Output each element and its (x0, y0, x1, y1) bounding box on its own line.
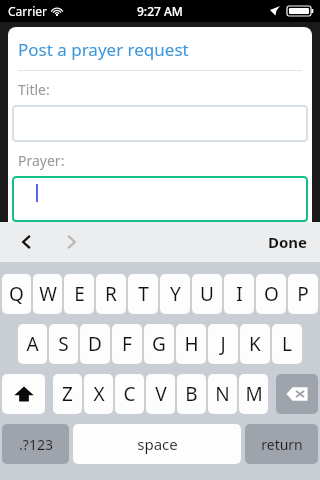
staticText: W (39, 281, 57, 307)
button[interactable]: J (208, 324, 238, 364)
staticText: return (261, 435, 303, 454)
button[interactable]: space (73, 424, 241, 464)
button[interactable]: A (18, 324, 47, 364)
staticText: 9:27 AM (137, 3, 183, 19)
button[interactable]: V (146, 374, 175, 414)
staticText: R (105, 281, 117, 307)
staticText: Carrier (8, 3, 48, 19)
button[interactable]: X (84, 374, 113, 414)
staticText: S (58, 331, 69, 357)
button[interactable]: Q (2, 274, 31, 314)
button[interactable]: K (240, 324, 270, 364)
staticText: K (249, 331, 261, 357)
staticText: U (200, 281, 214, 307)
staticText: D (88, 331, 102, 357)
staticText: F (122, 331, 132, 357)
button[interactable]: U (192, 274, 222, 314)
staticText: T (138, 281, 149, 307)
staticText: X (93, 381, 105, 407)
staticText: O (264, 281, 279, 307)
staticText: V (155, 381, 167, 407)
staticText: E (74, 281, 85, 307)
button[interactable]: G (144, 324, 174, 364)
staticText: space (137, 434, 178, 454)
staticText: H (184, 331, 199, 357)
staticText: B (185, 381, 198, 407)
staticText: Y (170, 281, 181, 307)
button[interactable]: P (288, 274, 318, 314)
staticText: A (26, 331, 39, 357)
staticText: .?123 (19, 435, 53, 454)
staticText: Post a prayer request (18, 38, 189, 61)
button[interactable]: Next field (52, 223, 90, 261)
staticText: I (236, 281, 243, 307)
button[interactable] (12, 176, 308, 222)
staticText: N (215, 381, 230, 407)
button[interactable]: Shift (2, 374, 45, 414)
staticText: L (282, 331, 292, 357)
button[interactable]: Backspace (276, 374, 318, 414)
button[interactable]: O (256, 274, 286, 314)
staticText: Title: (18, 80, 50, 99)
button[interactable]: E (64, 274, 94, 314)
staticText: M (245, 381, 263, 407)
button[interactable]: M (239, 374, 268, 414)
staticText: J (220, 331, 226, 357)
button[interactable]: W (33, 274, 62, 314)
staticText: Prayer: (18, 151, 65, 170)
button[interactable]: H (176, 324, 206, 364)
button[interactable]: return (245, 424, 318, 464)
button[interactable]: Done (268, 232, 308, 252)
button[interactable]: L (272, 324, 302, 364)
button[interactable]: D (80, 324, 110, 364)
button[interactable]: S (49, 324, 78, 364)
button[interactable] (12, 105, 308, 142)
staticText: Done (268, 232, 308, 252)
staticText: Z (62, 381, 73, 407)
button[interactable]: I (224, 274, 254, 314)
staticText: P (297, 281, 309, 307)
button[interactable]: Y (160, 274, 190, 314)
button[interactable]: N (208, 374, 237, 414)
button[interactable]: Z (53, 374, 82, 414)
staticText: G (152, 331, 166, 357)
button[interactable]: R (96, 274, 126, 314)
button[interactable]: F (112, 324, 142, 364)
button[interactable]: B (177, 374, 206, 414)
button[interactable]: C (115, 374, 144, 414)
button[interactable]: Previous field (8, 223, 46, 261)
staticText: C (123, 381, 136, 407)
staticText: Q (9, 281, 24, 307)
button[interactable]: .?123 (2, 424, 69, 464)
button[interactable]: T (128, 274, 158, 314)
